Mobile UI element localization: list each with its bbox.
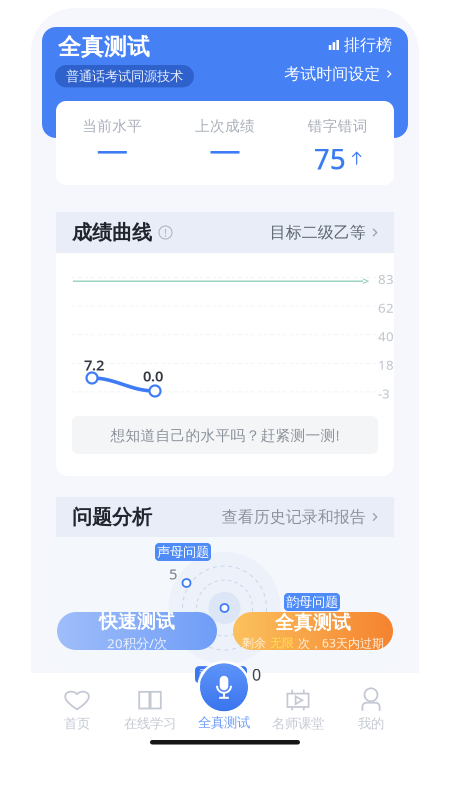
staticText: 20积分/次 xyxy=(107,634,167,652)
staticText: 考试时间设定 xyxy=(284,64,380,84)
button[interactable]: 在线学习 xyxy=(117,689,183,731)
staticText: 查看历史记录和报告 xyxy=(222,507,366,527)
staticText: 在线学习 xyxy=(124,715,176,732)
staticText: 首页 xyxy=(64,715,90,732)
staticText: 次，63天内过期 xyxy=(294,635,384,651)
staticText: 韵母问题 xyxy=(286,594,338,610)
button[interactable]: 全真测试 xyxy=(233,612,393,650)
staticText: 想知道自己的水平吗？赶紧测一测! xyxy=(110,425,339,445)
staticText: 75 xyxy=(314,140,346,177)
staticText: 7.2 xyxy=(84,355,104,374)
button[interactable]: 查看历史记录和报告 xyxy=(222,507,378,527)
staticText: 全真测试 xyxy=(198,714,250,731)
button[interactable]: 名师课堂 xyxy=(265,689,331,731)
button[interactable]: 首页 xyxy=(44,689,110,731)
staticText: 83 xyxy=(378,270,394,288)
staticText: 普通话考试同源技术 xyxy=(66,68,183,84)
staticText: 错字错词 xyxy=(308,117,368,135)
staticText: 我的 xyxy=(358,715,384,732)
staticText: 问题分析 xyxy=(72,505,152,529)
staticText: 5 xyxy=(169,564,177,583)
staticText: 上次成绩 xyxy=(195,117,255,135)
staticText: 0 xyxy=(252,664,261,685)
staticText: 排行榜 xyxy=(344,35,392,55)
staticText: 当前水平 xyxy=(82,117,142,135)
staticText: 声母问题 xyxy=(157,544,209,560)
staticText: 无限 xyxy=(270,636,294,650)
staticText: -3 xyxy=(378,384,390,402)
staticText: 18 xyxy=(378,356,394,373)
staticText: 成绩曲线 xyxy=(72,220,152,245)
staticText: 40 xyxy=(378,327,394,345)
staticText: 剩余 xyxy=(242,636,270,650)
staticText: ! xyxy=(164,225,167,240)
staticText: 0.0 xyxy=(143,366,163,385)
staticText: 剩余 xyxy=(199,667,223,682)
staticText: 全真测试 xyxy=(275,611,351,634)
staticText: 快速测试 xyxy=(99,610,175,633)
button[interactable]: 考试时间设定 xyxy=(280,65,392,83)
button[interactable]: 全真测试 xyxy=(191,663,257,731)
staticText: 62 xyxy=(378,299,394,316)
staticText: 名师课堂 xyxy=(272,715,324,732)
button[interactable]: 我的 xyxy=(338,689,404,731)
staticText: 目标二级乙等 xyxy=(270,223,366,242)
button[interactable]: 目标二级乙等 xyxy=(270,223,378,242)
button[interactable]: 排行榜 xyxy=(322,36,392,54)
button[interactable]: 快速测试 xyxy=(57,612,217,650)
staticText: 全真测试 xyxy=(58,33,150,61)
